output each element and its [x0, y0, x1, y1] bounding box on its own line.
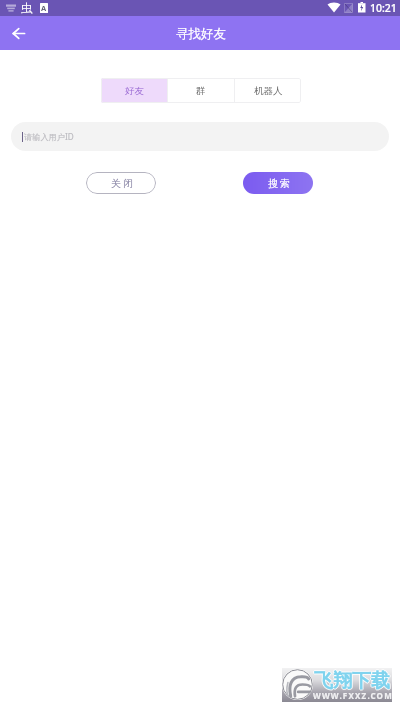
- button[interactable]: 请输入用户ID: [11, 122, 389, 151]
- staticText: 虫: [21, 1, 33, 15]
- staticText: 飞翔下载: [315, 669, 391, 693]
- button[interactable]: 群: [168, 78, 234, 103]
- staticText: 飞翔下载: [314, 670, 390, 694]
- staticText: 搜索: [267, 177, 291, 190]
- staticText: WWW.FXXZ.COM: [313, 690, 393, 701]
- staticText: A: [41, 3, 47, 13]
- staticText: 关闭: [110, 177, 134, 190]
- staticText: 请输入用户ID: [24, 131, 74, 142]
- staticText: 寻找好友: [176, 26, 226, 42]
- button[interactable]: 机器人: [235, 78, 301, 103]
- staticText: 飞翔下载: [313, 669, 389, 693]
- staticText: 飞翔下载: [314, 669, 390, 693]
- staticText: 好友: [125, 85, 144, 97]
- button[interactable]: Back: [5, 20, 31, 46]
- staticText: 群: [196, 85, 206, 97]
- button[interactable]: 搜索: [243, 172, 313, 194]
- staticText: 10:21: [370, 1, 397, 15]
- button[interactable]: 好友: [101, 78, 167, 103]
- staticText: 飞翔下载: [314, 668, 390, 692]
- button[interactable]: 关闭: [86, 172, 156, 194]
- staticText: 机器人: [254, 85, 283, 97]
